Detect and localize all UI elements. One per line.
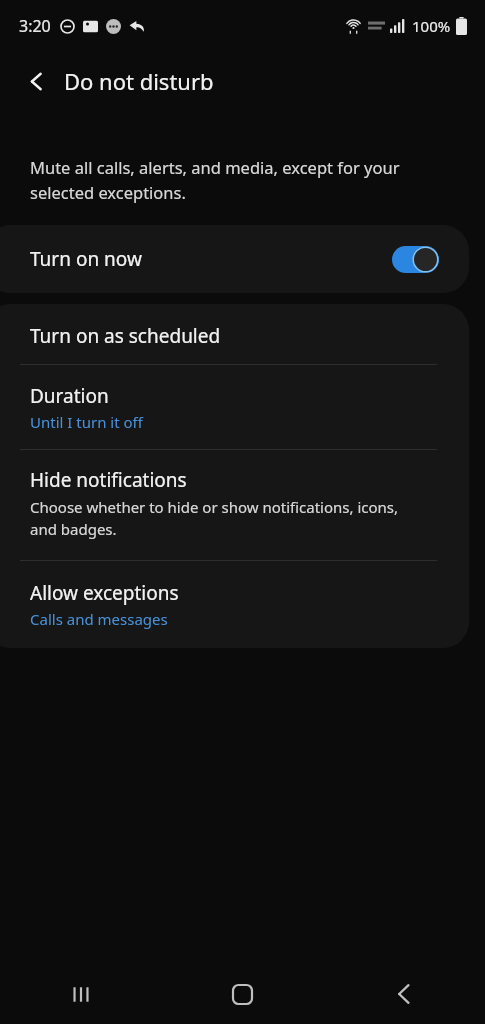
staticText: 3:20	[19, 15, 51, 37]
button[interactable]: Turn on now	[392, 246, 439, 273]
staticText: Allow exceptions	[30, 580, 179, 606]
staticText: Until I turn it off	[30, 412, 143, 432]
staticText: Duration	[30, 383, 109, 409]
button[interactable]: Recent apps	[0, 964, 161, 1024]
staticText: Do not disturb	[64, 66, 214, 96]
button[interactable]: Navigate up	[14, 59, 58, 103]
staticText: Turn on as scheduled	[30, 323, 221, 349]
button[interactable]: Allow exceptions	[0, 561, 469, 648]
button[interactable]: Back	[323, 964, 485, 1024]
button[interactable]: Turn on now	[0, 225, 469, 293]
staticText: 100%	[412, 16, 451, 36]
staticText: Hide notifications	[30, 467, 187, 493]
button[interactable]: Home	[161, 964, 323, 1024]
button[interactable]: Hide notifications	[0, 450, 469, 560]
staticText: Choose whether to hide or show notificat…	[30, 497, 417, 540]
staticText: Turn on now	[30, 246, 142, 272]
button[interactable]: Turn on as scheduled	[0, 304, 469, 364]
button[interactable]: Duration	[0, 365, 469, 449]
staticText: Calls and messages	[30, 609, 168, 629]
staticText: Mute all calls, alerts, and media, excep…	[30, 156, 451, 203]
